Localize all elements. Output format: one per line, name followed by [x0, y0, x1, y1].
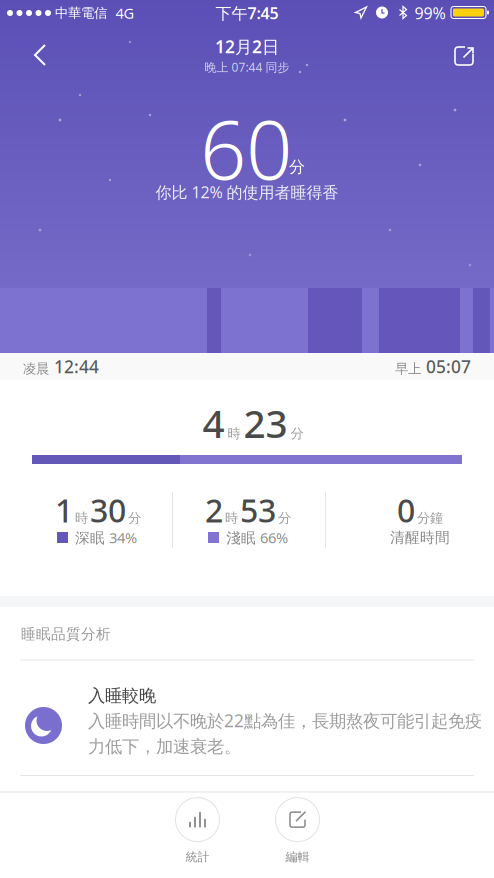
- staticText: 分: [128, 510, 141, 526]
- staticText: 23: [243, 397, 287, 449]
- staticText: 99%: [414, 2, 445, 24]
- staticText: 2: [205, 489, 223, 531]
- staticText: 時: [227, 425, 240, 442]
- staticText: 深眠 34%: [75, 528, 137, 547]
- staticText: 分: [289, 157, 305, 177]
- staticText: 分: [290, 425, 303, 442]
- staticText: 入睡較晚: [88, 685, 156, 706]
- staticText: 編輯: [285, 850, 309, 864]
- staticText: 60: [200, 94, 292, 202]
- button[interactable]: [21, 35, 61, 75]
- staticText: 時: [75, 510, 88, 526]
- staticText: 0: [397, 489, 415, 531]
- staticText: 晚上 07:44 同步: [204, 59, 289, 75]
- button[interactable]: 入睡較晚: [0, 668, 494, 783]
- staticText: 入睡時間以不晚於22點為佳，長期熬夜可能引起免疫 力低下，加速衰老。: [88, 709, 482, 757]
- staticText: 早上: [395, 361, 421, 377]
- staticText: 清醒時間: [390, 528, 450, 546]
- staticText: 4: [202, 397, 224, 449]
- staticText: 你比 12% 的使用者睡得香: [155, 181, 338, 203]
- staticText: 30: [90, 489, 126, 531]
- staticText: 12月2日: [215, 35, 279, 58]
- staticText: 4G: [115, 3, 134, 23]
- staticText: 統計: [185, 850, 209, 864]
- staticText: 12:44: [54, 355, 99, 378]
- button[interactable]: [446, 37, 482, 73]
- staticText: 睡眠品質分析: [21, 625, 111, 643]
- staticText: 05:07: [426, 355, 471, 378]
- button[interactable]: 統計: [175, 798, 219, 864]
- staticText: 1: [55, 489, 73, 531]
- button[interactable]: 編輯: [275, 798, 319, 864]
- staticText: 時: [225, 510, 238, 526]
- staticText: 凌晨: [23, 361, 49, 377]
- staticText: 53: [240, 489, 276, 531]
- staticText: 中華電信: [55, 5, 107, 21]
- staticText: 淺眠 66%: [226, 528, 288, 547]
- staticText: 分鐘: [417, 510, 443, 526]
- staticText: 下午7:45: [215, 2, 278, 24]
- staticText: 分: [278, 510, 291, 526]
